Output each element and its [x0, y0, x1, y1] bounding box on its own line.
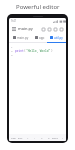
- staticText: "Hello, World": [26, 49, 51, 53]
- staticText: Esc: [18, 136, 23, 139]
- button[interactable]: Search: [52, 25, 58, 33]
- staticText: :: [34, 136, 36, 139]
- button[interactable]: Tab: [9, 134, 17, 141]
- staticText: ^: [41, 136, 43, 139]
- staticText: (: [24, 49, 26, 53]
- staticText: ): [51, 49, 53, 53]
- button[interactable]: Keys: [52, 134, 59, 141]
- button[interactable]: util.py: [47, 33, 66, 42]
- button[interactable]: More options: [58, 25, 64, 33]
- button[interactable]: print: [14, 43, 66, 134]
- staticText: 3: [11, 53, 13, 56]
- staticText: 9:41: [11, 19, 17, 23]
- staticText: /: [27, 136, 29, 139]
- staticText: main.py: [18, 26, 33, 31]
- button[interactable]: app: [32, 33, 47, 42]
- staticText: |: [62, 136, 64, 139]
- button[interactable]: Menu: [11, 26, 17, 32]
- staticText: Powerful editor: [16, 3, 60, 11]
- staticText: Tab: [11, 136, 16, 139]
- staticText: 2: [11, 49, 13, 52]
- button[interactable]: Undo: [40, 25, 46, 33]
- staticText: main.py: [17, 36, 29, 40]
- staticText: 1: [11, 45, 13, 48]
- staticText: v: [48, 136, 50, 139]
- staticText: app: [39, 36, 45, 40]
- button[interactable]: Esc: [17, 134, 24, 141]
- button[interactable]: Redo: [46, 25, 52, 33]
- staticText: util.py: [54, 36, 63, 40]
- button[interactable]: |: [59, 134, 66, 141]
- button[interactable]: main.py: [9, 33, 32, 42]
- staticText: Keys: [52, 136, 59, 139]
- button[interactable]: ^: [38, 134, 45, 141]
- button[interactable]: v: [45, 134, 52, 141]
- button[interactable]: /: [24, 134, 31, 141]
- staticText: print: [15, 49, 24, 53]
